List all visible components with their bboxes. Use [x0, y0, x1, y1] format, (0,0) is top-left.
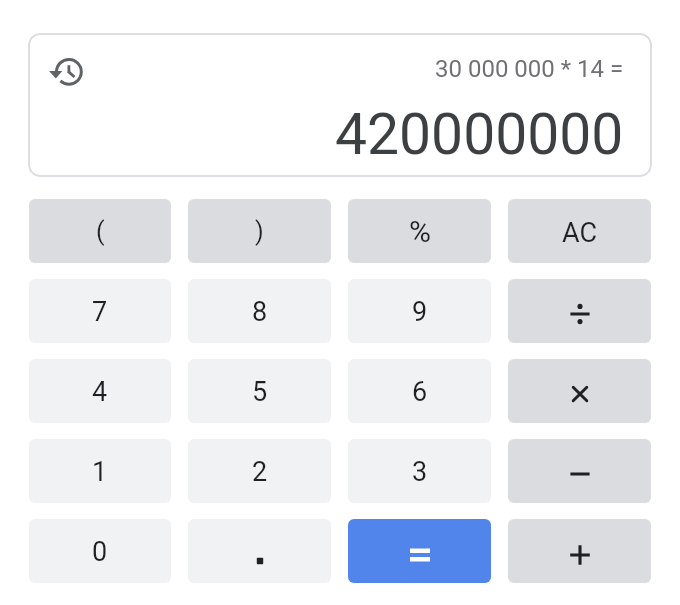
staticText: 2 [252, 456, 268, 488]
staticText: ( [96, 217, 105, 246]
staticText: 5 [252, 376, 268, 408]
button[interactable]: . [188, 519, 331, 583]
staticText: 8 [252, 296, 268, 328]
staticText: 30 000 000 * 14 = [435, 55, 624, 83]
staticText: 3 [412, 456, 428, 488]
button[interactable]: 1 [29, 439, 171, 503]
staticText: 9 [412, 296, 428, 328]
button[interactable]: Divide [508, 279, 651, 343]
staticText: 4 [92, 376, 108, 408]
staticText: 420000000 [335, 101, 624, 168]
button[interactable]: 8 [188, 279, 331, 343]
button[interactable]: 4 [29, 359, 171, 423]
button[interactable]: Minus [508, 439, 651, 503]
button[interactable]: 5 [188, 359, 331, 423]
button[interactable]: 9 [348, 279, 491, 343]
staticText: 0 [92, 536, 108, 568]
button[interactable]: 6 [348, 359, 491, 423]
staticText: % [409, 214, 431, 249]
button[interactable]: Plus [508, 519, 651, 583]
button[interactable]: 7 [29, 279, 171, 343]
button[interactable]: AC [508, 199, 651, 263]
button[interactable]: 0 [29, 519, 171, 583]
staticText: AC [562, 217, 598, 249]
button[interactable]: History [47, 51, 85, 89]
button[interactable]: ) [188, 199, 331, 263]
button[interactable]: % [348, 199, 491, 263]
staticText: 1 [92, 456, 108, 488]
button[interactable]: 3 [348, 439, 491, 503]
button[interactable]: Equals [348, 519, 491, 583]
staticText: ) [255, 217, 264, 246]
staticText: 7 [92, 296, 108, 328]
staticText: 6 [412, 376, 428, 408]
button[interactable]: Multiply [508, 359, 651, 423]
button[interactable]: 2 [188, 439, 331, 503]
button[interactable]: ( [29, 199, 171, 263]
